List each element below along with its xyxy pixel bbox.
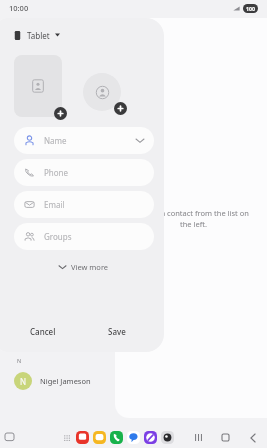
button[interactable]: Add [54,107,67,120]
staticText: Tablet [27,30,50,41]
button[interactable]: Recents [192,431,205,444]
button[interactable]: Cancel [24,322,62,341]
button[interactable]: Recent app [4,432,15,443]
staticText: N [17,357,22,364]
button[interactable]: Save [102,322,132,341]
button[interactable]: Back [246,431,259,444]
button[interactable]: Notes [144,431,157,444]
button[interactable]: N [14,368,114,394]
button[interactable]: Email [14,191,154,218]
button[interactable]: Chat [127,431,140,444]
staticText: 10:00 [9,3,29,13]
staticText: Nigel Jameson [40,376,91,386]
button[interactable]: Add photo [14,55,62,117]
button[interactable]: Camera [161,431,174,444]
staticText: Save [108,326,126,337]
staticText: Phone [44,167,69,178]
staticText: Name [44,135,67,146]
staticText: Groups [44,231,72,242]
button[interactable]: Messages [76,431,89,444]
staticText: Cancel [30,326,56,337]
staticText: Email [44,199,65,210]
staticText: Select a contact from the list on the le… [138,208,249,229]
button[interactable]: Add avatar [83,73,121,111]
button[interactable]: View more [14,259,154,275]
button[interactable]: Phone [14,159,154,186]
staticText: 100 [246,5,255,12]
button[interactable]: Phone [110,431,123,444]
button[interactable]: Add [114,102,127,115]
button[interactable]: Home [219,431,232,444]
button[interactable]: Groups [14,223,154,250]
button[interactable]: Gallery [93,431,106,444]
staticText: View more [71,262,109,272]
button[interactable]: Tablet [14,27,60,43]
button[interactable]: Apps [62,433,72,443]
button[interactable]: Name [14,127,154,154]
staticText: N [20,376,27,387]
